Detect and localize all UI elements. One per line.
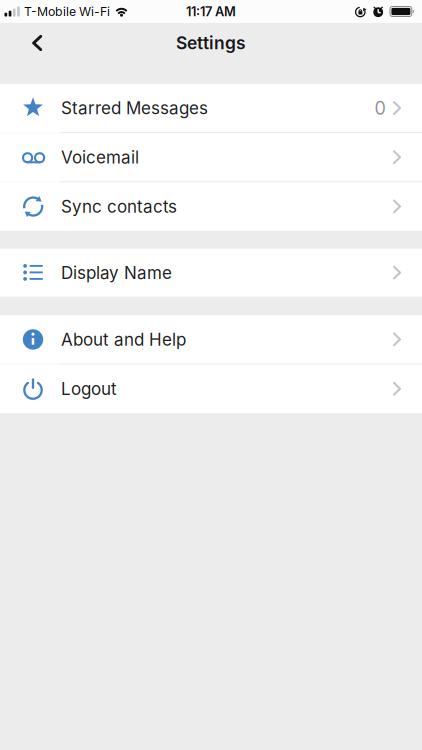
staticText: Sync contacts	[61, 196, 177, 217]
staticText: 11:17 AM	[186, 4, 236, 19]
staticText: T-Mobile Wi-Fi	[24, 4, 110, 19]
staticText: Settings	[176, 32, 246, 54]
staticText: Starred Messages	[61, 98, 208, 118]
staticText: Logout	[61, 379, 117, 399]
staticText: About and Help	[61, 329, 186, 350]
staticText: Display Name	[61, 262, 172, 283]
staticText: Voicemail	[61, 147, 139, 168]
staticText: 0	[374, 97, 385, 119]
